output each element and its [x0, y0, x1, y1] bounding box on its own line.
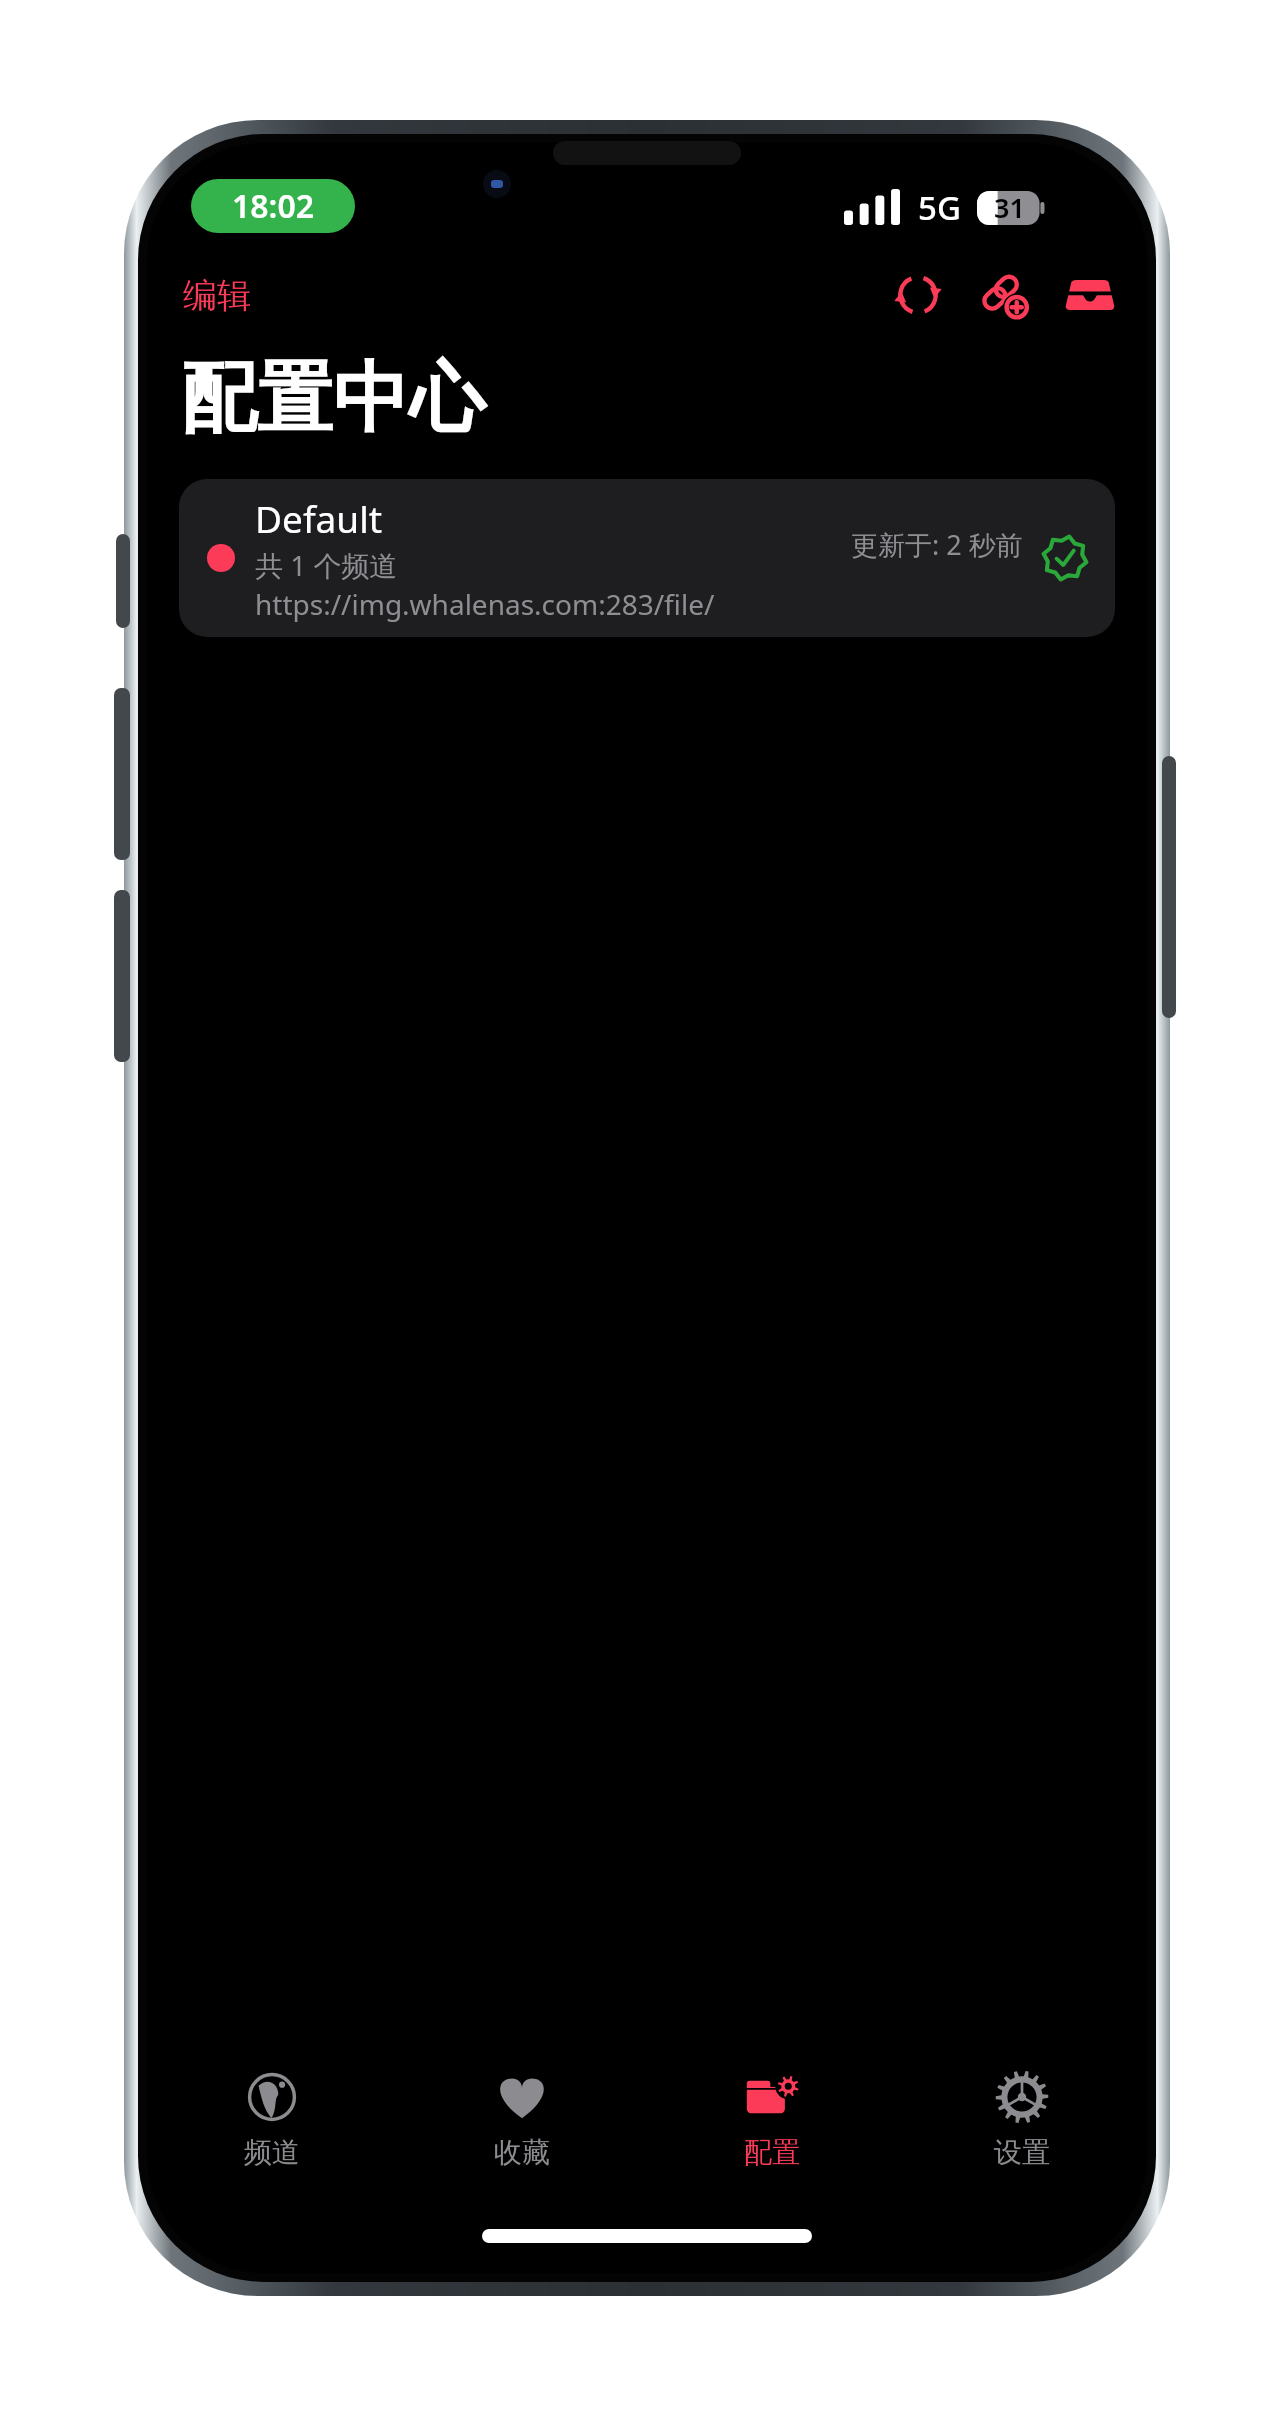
staticText: 共 1 个频道	[255, 546, 398, 584]
staticText: 配置	[744, 2135, 800, 2170]
button[interactable]: Inbox	[1057, 262, 1123, 328]
staticText: https://img.whalenas.com:283/file/demo.m…	[255, 585, 843, 623]
staticText: 18:02	[232, 184, 315, 228]
button[interactable]: Add link	[971, 262, 1037, 328]
staticText: 更新于: 2 秒前	[851, 526, 1023, 563]
staticText: 收藏	[494, 2135, 550, 2170]
staticText: 设置	[994, 2135, 1050, 2170]
staticText: 编辑	[183, 274, 251, 317]
staticText: 31	[994, 189, 1025, 226]
button[interactable]: 收藏	[397, 2043, 647, 2195]
button[interactable]: Default	[179, 479, 1115, 637]
button[interactable]: 频道	[147, 2043, 397, 2195]
staticText: Default	[255, 493, 383, 543]
button[interactable]: 设置	[897, 2043, 1147, 2195]
button[interactable]: Refresh	[885, 262, 951, 328]
button[interactable]: 配置	[647, 2043, 897, 2195]
staticText: 频道	[244, 2135, 300, 2170]
staticText: 配置中心	[181, 351, 485, 447]
button[interactable]: 编辑	[177, 266, 257, 325]
staticText: 5G	[918, 185, 961, 229]
